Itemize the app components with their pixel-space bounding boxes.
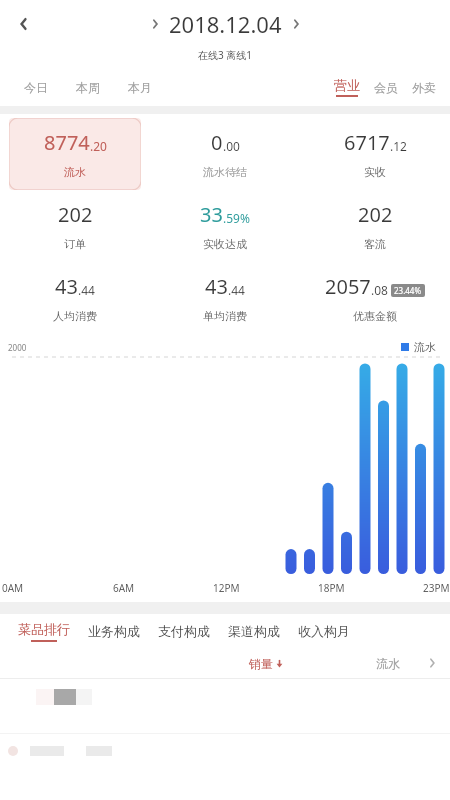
staticText: 收入构月 [298, 623, 350, 639]
button[interactable]: 43 [150, 262, 300, 334]
staticText: 0AM [2, 581, 24, 595]
button[interactable]: 菜品排行 [18, 621, 70, 642]
staticText: 今日 [24, 80, 48, 95]
staticText: 实收达成 [203, 237, 247, 251]
staticText: 12PM [213, 581, 240, 595]
button[interactable]: 外卖 [412, 80, 436, 95]
staticText: 43 [55, 273, 78, 300]
staticText: 渠道构成 [228, 623, 280, 639]
staticText: 在线3 离线1 [198, 48, 253, 62]
staticText: 支付构成 [158, 623, 210, 639]
button[interactable]: Next day [282, 10, 310, 38]
staticText: 实收 [364, 165, 386, 179]
staticText: .44 [78, 282, 95, 298]
staticText: 流水 [64, 165, 86, 179]
staticText: 订单 [64, 237, 86, 251]
staticText: 33 [200, 201, 223, 228]
button[interactable]: 2057 [300, 262, 450, 334]
staticText: 菜品排行 [18, 621, 70, 637]
staticText: 6717 [344, 129, 390, 156]
button[interactable]: 本周 [76, 80, 100, 95]
staticText: .12 [390, 138, 407, 154]
button[interactable]: Previous day [141, 10, 169, 38]
staticText: 流水 [414, 340, 436, 354]
staticText: 销量 [249, 656, 273, 671]
button[interactable]: 流水 [376, 656, 400, 671]
staticText: 单均消费 [203, 309, 247, 323]
staticText: .44 [228, 282, 245, 298]
staticText: 客流 [364, 237, 386, 251]
staticText: 外卖 [412, 80, 436, 95]
staticText: .08 [371, 282, 388, 298]
staticText: 202 [358, 201, 393, 228]
button[interactable]: 202 [300, 190, 450, 262]
staticText: 优惠金额 [353, 309, 397, 323]
button[interactable]: 会员 [374, 80, 398, 95]
button[interactable]: 33 [150, 190, 300, 262]
button[interactable]: 202 [0, 190, 150, 262]
staticText: 2000 [8, 342, 27, 353]
staticText: 202 [58, 201, 93, 228]
staticText: .20 [90, 138, 107, 154]
button[interactable]: 0 [150, 118, 300, 190]
button[interactable]: 业务构成 [88, 623, 140, 639]
staticText: 2018.12.04 [169, 9, 282, 39]
staticText: 43 [205, 273, 228, 300]
staticText: 8774 [44, 129, 90, 156]
button[interactable]: 今日 [24, 80, 48, 95]
staticText: .00 [223, 138, 240, 154]
staticText: .59% [223, 210, 250, 226]
staticText: 营业 [334, 77, 360, 93]
button[interactable]: 本月 [128, 80, 152, 95]
button[interactable]: 支付构成 [158, 623, 210, 639]
button[interactable]: 销量 [249, 656, 284, 671]
staticText: 会员 [374, 80, 398, 95]
staticText: 本月 [128, 80, 152, 95]
staticText: 18PM [318, 581, 345, 595]
staticText: 2057 [325, 273, 371, 300]
staticText: 流水待结 [203, 165, 247, 179]
staticText: 23.44% [394, 285, 422, 296]
button[interactable]: More [422, 653, 442, 673]
staticText: 0 [211, 129, 223, 156]
button[interactable]: 6717 [300, 118, 450, 190]
button[interactable]: 渠道构成 [228, 623, 280, 639]
button[interactable]: 收入构月 [298, 623, 350, 639]
staticText: 23PM [423, 581, 450, 595]
staticText: 人均消费 [53, 309, 97, 323]
button[interactable]: 8774 [9, 118, 141, 190]
staticText: 业务构成 [88, 623, 140, 639]
staticText: 流水 [376, 656, 400, 671]
staticText: 本周 [76, 80, 100, 95]
button[interactable]: Back [4, 4, 44, 44]
button[interactable]: 营业 [334, 77, 360, 97]
button[interactable]: 43 [0, 262, 150, 334]
staticText: 6AM [113, 581, 135, 595]
